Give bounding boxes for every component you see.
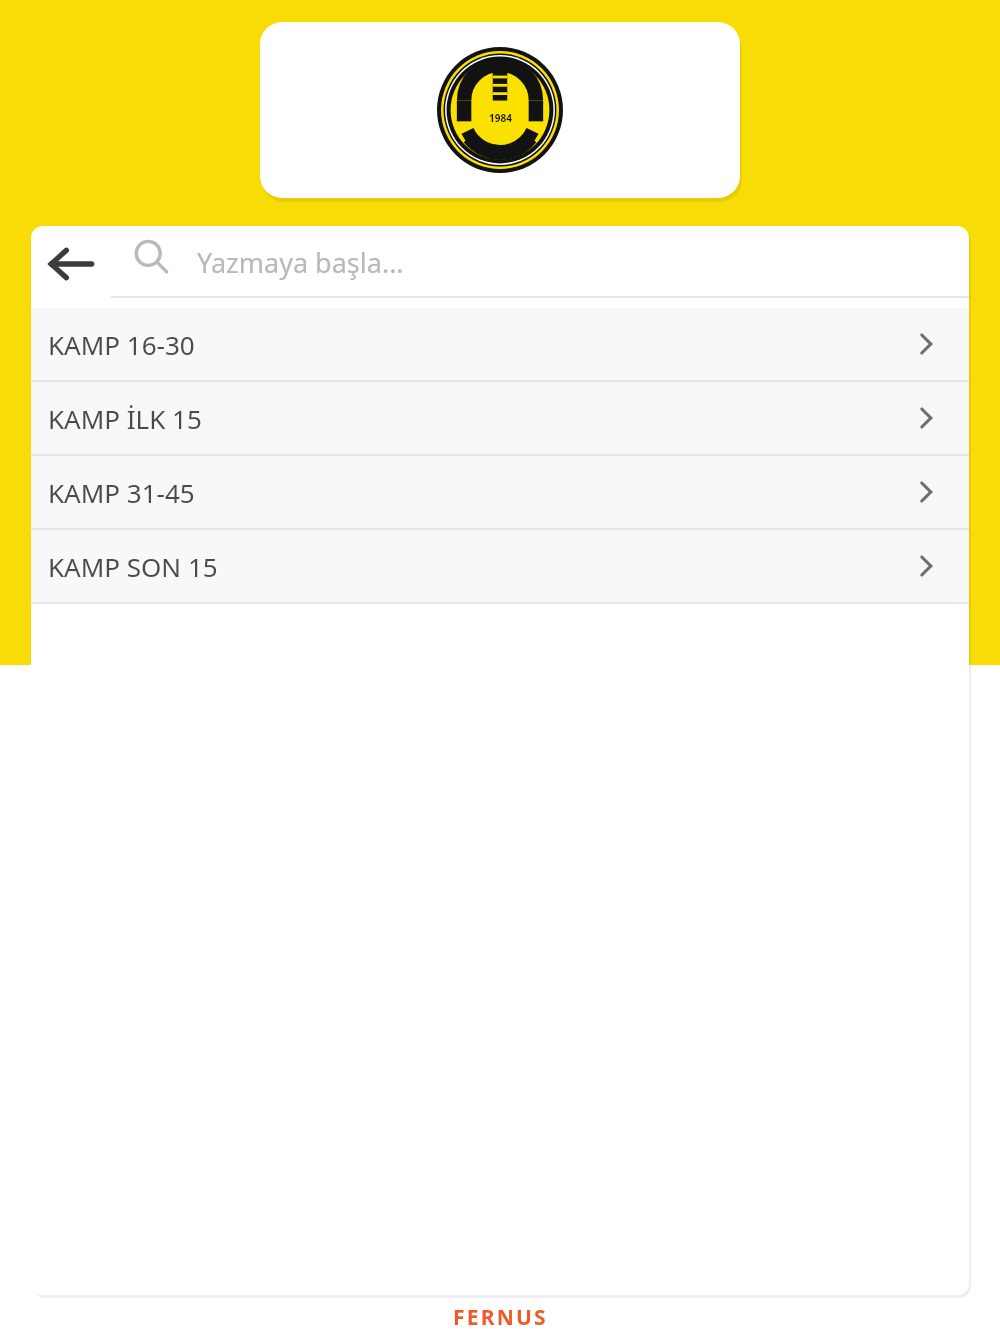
staticText: KAMP 16-30 bbox=[48, 327, 195, 362]
staticText: 1984 bbox=[489, 111, 512, 125]
button[interactable]: Yazmaya başla... bbox=[111, 226, 969, 308]
staticText: KAMP İLK 15 bbox=[48, 401, 202, 436]
button[interactable]: KAMP SON 15 bbox=[31, 530, 969, 602]
button[interactable]: Back bbox=[31, 226, 111, 308]
button[interactable]: KAMP 16-30 bbox=[31, 308, 969, 380]
staticText: Yazmaya başla... bbox=[197, 244, 404, 281]
staticText: KAMP 31-45 bbox=[48, 475, 195, 510]
button[interactable]: Tasarı Eğitim Yayınları logo bbox=[260, 22, 740, 198]
button[interactable]: KAMP 31-45 bbox=[31, 456, 969, 528]
button[interactable]: KAMP İLK 15 bbox=[31, 382, 969, 454]
staticText: FERNUS bbox=[453, 1303, 548, 1332]
staticText: KAMP SON 15 bbox=[48, 549, 218, 584]
